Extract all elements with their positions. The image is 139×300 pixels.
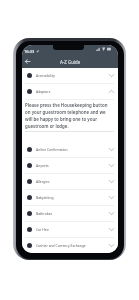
button[interactable]: Cashier and Currency Exchange xyxy=(22,238,118,253)
staticText: Accessibility xyxy=(36,73,109,78)
button[interactable]: Airline Confirmation xyxy=(22,142,118,157)
staticText: Please press the Housekeeping button on … xyxy=(25,102,111,129)
staticText: Airline Confirmation xyxy=(36,147,109,152)
staticText: Airports xyxy=(36,163,109,168)
staticText: Bathrobes xyxy=(36,211,109,216)
staticText: Car Hire xyxy=(36,227,109,232)
button[interactable]: Bathrobes xyxy=(22,206,118,221)
staticText: 16:33 xyxy=(24,49,35,54)
button[interactable]: Adaptors xyxy=(22,84,118,99)
button[interactable]: Airports xyxy=(22,158,118,173)
staticText: Cashier and Currency Exchange xyxy=(36,243,109,248)
button[interactable]: Allergies xyxy=(22,174,118,189)
staticText: Allergies xyxy=(36,179,109,184)
staticText: Babysitting xyxy=(36,195,109,200)
button[interactable]: Back xyxy=(22,55,33,68)
staticText: Adaptors xyxy=(36,89,109,94)
staticText: A-Z Guide xyxy=(60,59,81,65)
button[interactable]: Babysitting xyxy=(22,190,118,205)
button[interactable]: Car Hire xyxy=(22,222,118,237)
button[interactable]: Accessibility xyxy=(22,68,118,83)
